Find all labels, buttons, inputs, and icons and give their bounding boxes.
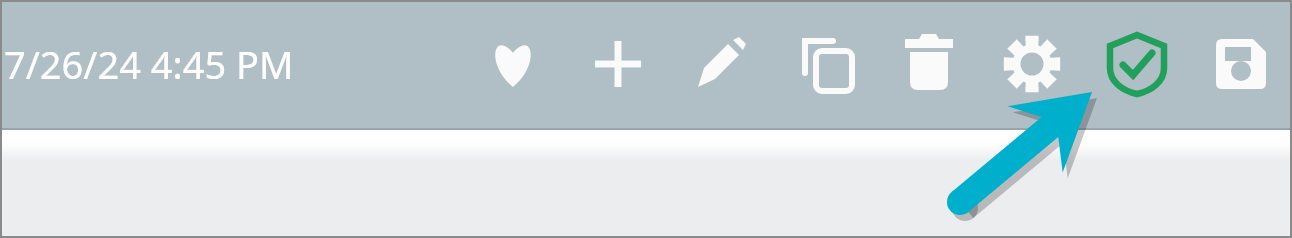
button[interactable]: Save [1203,26,1279,102]
button[interactable]: Add [580,26,656,102]
button[interactable]: Secure [1099,26,1175,102]
button[interactable]: Edit [684,26,760,102]
button[interactable]: Copy [787,26,863,102]
button[interactable]: 7/26/24 4:45 PM [4,38,294,90]
button[interactable]: Delete [891,26,967,102]
button[interactable]: Favorite [475,26,551,102]
button[interactable]: Settings [994,26,1070,102]
